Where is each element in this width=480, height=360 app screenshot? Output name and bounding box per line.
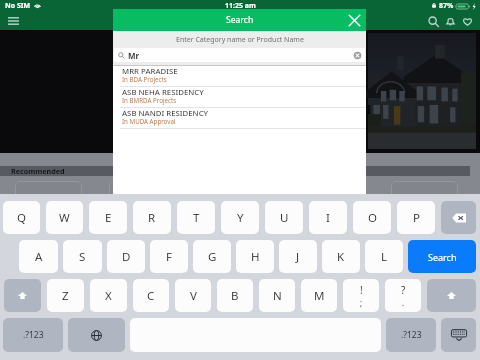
button[interactable]: Clear [353, 51, 362, 60]
button[interactable]: Notifications [443, 14, 457, 28]
staticText: J [296, 249, 300, 265]
button[interactable] [441, 201, 476, 234]
staticText: 11:25 am [225, 1, 256, 11]
button[interactable]: J [279, 240, 317, 273]
staticText: L [381, 249, 388, 265]
button[interactable]: I [309, 201, 347, 234]
button[interactable]: Q [3, 201, 40, 234]
button[interactable]: U [265, 201, 303, 234]
button[interactable]: E [89, 201, 127, 234]
button[interactable] [427, 279, 476, 312]
button[interactable]: .?123 [3, 318, 63, 352]
button[interactable]: B [217, 279, 253, 312]
button[interactable]: Y [221, 201, 259, 234]
button[interactable]: K [322, 240, 360, 273]
staticText: Search [428, 251, 457, 263]
staticText: In BDA Projects [122, 75, 167, 83]
staticText: D [122, 249, 131, 265]
staticText: I [326, 210, 330, 226]
staticText: . [402, 297, 405, 308]
staticText: R [148, 210, 156, 226]
staticText: Recommended [11, 166, 65, 176]
staticText: H [251, 249, 260, 265]
staticText: V [190, 288, 197, 304]
button[interactable]: V [175, 279, 211, 312]
staticText: E [105, 210, 112, 226]
button[interactable]: P [397, 201, 435, 234]
staticText: ASB NANDI RESIDENCY [122, 108, 209, 119]
staticText: P [413, 210, 420, 226]
staticText: ? [401, 283, 406, 297]
button[interactable] [4, 279, 41, 312]
button[interactable]: H [236, 240, 274, 273]
button[interactable]: M [301, 279, 337, 312]
button[interactable]: .?123 [386, 318, 436, 352]
button[interactable]: L [365, 240, 403, 273]
button[interactable]: F [150, 240, 188, 273]
staticText: Z [62, 288, 69, 304]
staticText: .?123 [23, 329, 44, 341]
button[interactable]: D [107, 240, 145, 273]
button[interactable]: S [63, 240, 102, 273]
button[interactable]: G [193, 240, 231, 273]
staticText: S [79, 249, 86, 265]
staticText: X [105, 288, 112, 304]
button[interactable]: ? [385, 279, 421, 312]
staticText: G [208, 249, 217, 265]
button[interactable]: N [259, 279, 295, 312]
button[interactable]: Mr [114, 48, 365, 62]
staticText: MRR PARADISE [122, 66, 178, 77]
button[interactable] [203, 181, 270, 226]
button[interactable]: Search [408, 240, 476, 273]
staticText: In MUDA Approval [122, 117, 176, 125]
staticText: F [166, 249, 172, 265]
button[interactable]: Search [426, 14, 440, 28]
button[interactable]: A [19, 240, 58, 273]
staticText: C [147, 288, 155, 304]
button[interactable]: C [133, 279, 169, 312]
staticText: Q [17, 210, 26, 226]
button[interactable]: T [177, 201, 215, 234]
staticText: ; [360, 297, 363, 308]
staticText: Search [226, 14, 254, 26]
staticText: Y [237, 210, 244, 226]
button[interactable]: Z [47, 279, 84, 312]
staticText: ! [360, 283, 363, 297]
button[interactable]: Favorites [460, 14, 474, 28]
button[interactable]: O [353, 201, 391, 234]
staticText: ASB NEHA RESIDENCY [122, 87, 204, 98]
staticText: In BMRDA Projects [122, 96, 177, 104]
button[interactable]: Close [346, 12, 362, 28]
button[interactable]: MRR PARADISE [113, 66, 366, 87]
button[interactable] [297, 181, 364, 226]
staticText: B [231, 288, 239, 304]
button[interactable] [391, 181, 458, 226]
button[interactable]: W [46, 201, 83, 234]
staticText: M [314, 288, 325, 304]
staticText: W [59, 210, 70, 226]
staticText: Mr [128, 50, 140, 61]
staticText: K [337, 249, 345, 265]
button[interactable]: R [133, 201, 171, 234]
staticText: N [273, 288, 282, 304]
button[interactable]: ASB NANDI RESIDENCY [113, 108, 366, 129]
staticText: T [193, 210, 200, 226]
button[interactable]: ! [343, 279, 379, 312]
button[interactable] [68, 318, 125, 352]
staticText: 87% [439, 1, 454, 11]
staticText: O [368, 210, 377, 226]
staticText: .?123 [401, 329, 422, 341]
staticText: U [280, 210, 289, 226]
button[interactable] [441, 318, 476, 352]
staticText: A [35, 249, 43, 265]
staticText: Enter Category name or Product Name [176, 35, 304, 45]
staticText: No SIM [5, 1, 31, 11]
button[interactable]: ASB NEHA RESIDENCY [113, 87, 366, 108]
button[interactable] [15, 181, 82, 226]
button[interactable]: X [90, 279, 127, 312]
button[interactable]: Menu [6, 14, 20, 28]
button[interactable] [109, 181, 176, 226]
